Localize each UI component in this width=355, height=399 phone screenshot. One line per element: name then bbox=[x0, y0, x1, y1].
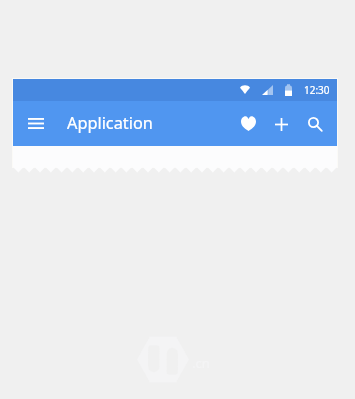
button[interactable]: Favorites bbox=[234, 110, 262, 138]
button[interactable]: Add bbox=[267, 110, 295, 138]
staticText: Application bbox=[67, 112, 153, 134]
button[interactable]: Open navigation menu bbox=[20, 109, 52, 137]
button[interactable]: Search bbox=[301, 110, 329, 138]
staticText: 12:30 bbox=[304, 83, 330, 97]
